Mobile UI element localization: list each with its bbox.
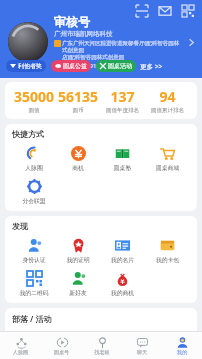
staticText: 94 bbox=[145, 87, 190, 106]
staticText: 找老板 bbox=[82, 349, 122, 356]
staticText: 审核号 bbox=[54, 14, 90, 29]
staticText: 12345678910 bbox=[62, 62, 100, 70]
staticText: 部落 / 活动 bbox=[12, 313, 52, 324]
staticText: 圆桌活动 bbox=[108, 62, 132, 70]
staticText: 圆桌公益 bbox=[63, 62, 87, 70]
staticText: 我的证明 bbox=[56, 256, 100, 263]
staticText: 圆桌商城 bbox=[145, 164, 190, 171]
staticText: 我的 bbox=[162, 349, 202, 356]
staticText: 35000 bbox=[12, 87, 56, 106]
button[interactable]: QR code bbox=[180, 3, 196, 19]
button[interactable]: 部落申请 bbox=[56, 328, 100, 354]
staticText: 商机 bbox=[56, 164, 100, 171]
staticText: 部落 bbox=[12, 349, 56, 352]
button[interactable]: 35000 bbox=[12, 87, 56, 114]
button[interactable]: 我的证明 bbox=[56, 235, 100, 265]
staticText: 身份认证 bbox=[12, 256, 56, 263]
staticText: 圆值 bbox=[12, 107, 56, 114]
button[interactable]: 创建部落 bbox=[100, 328, 145, 354]
button[interactable]: 我的名片 bbox=[100, 235, 145, 265]
staticText: 137 bbox=[100, 87, 145, 106]
staticText: 新好友 bbox=[56, 289, 100, 296]
button[interactable]: 我的活动 bbox=[145, 328, 190, 354]
button[interactable]: 商机 bbox=[56, 143, 100, 173]
button[interactable]: 圆桌塾 bbox=[100, 143, 145, 173]
button[interactable]: 圆桌商城 bbox=[145, 143, 190, 173]
staticText: 圆值年度排名 bbox=[100, 107, 145, 114]
staticText: 我的活动 bbox=[145, 349, 190, 352]
button[interactable]: 找老板 bbox=[82, 332, 122, 359]
staticText: 聊天 bbox=[122, 349, 162, 356]
button[interactable]: 聊天 bbox=[122, 332, 162, 359]
button[interactable]: 更多 >> bbox=[140, 62, 163, 71]
staticText: 创建部落 bbox=[100, 349, 145, 352]
staticText: 我的卡包 bbox=[145, 256, 190, 263]
button[interactable]: 圆桌号 bbox=[41, 332, 82, 359]
staticText: 圆值累计排名 bbox=[145, 107, 190, 114]
staticText: 人脉圈 bbox=[12, 164, 56, 171]
staticText: 广州市瑞凯网络科技 bbox=[54, 30, 113, 38]
staticText: 分会联盟 bbox=[12, 197, 56, 204]
staticText: 圆桌塾 bbox=[100, 164, 145, 171]
button[interactable]: 圆桌公益 bbox=[51, 60, 91, 72]
staticText: 圆币 bbox=[56, 107, 100, 114]
button[interactable]: 新好友 bbox=[56, 268, 100, 298]
button[interactable]: 部落 bbox=[12, 328, 56, 354]
button[interactable]: 利他者奖 bbox=[6, 60, 46, 72]
staticText: 利他者奖 bbox=[18, 62, 42, 70]
button[interactable]: 我的卡包 bbox=[145, 235, 190, 265]
button[interactable]: 身份认证 bbox=[12, 235, 56, 265]
staticText: 56135 bbox=[56, 87, 100, 106]
staticText: 更多 >> bbox=[140, 62, 163, 71]
staticText: 快捷方式 bbox=[12, 129, 44, 139]
staticText: 人脉圈 bbox=[0, 349, 41, 356]
staticText: 部落申请 bbox=[56, 349, 100, 352]
button[interactable]: 56135 bbox=[56, 87, 100, 114]
button[interactable]: Messages bbox=[157, 3, 173, 19]
button[interactable]: 人脉圈 bbox=[0, 332, 41, 359]
other: More bbox=[184, 35, 198, 49]
button[interactable]: 人脉圈 bbox=[12, 143, 56, 173]
staticText: 我的二维码 bbox=[12, 289, 56, 296]
staticText: 广东广州天河区粽进街道聚馨餐厅(配科智谷园林式创意园 店)配科智谷园林式创意园 bbox=[62, 39, 184, 61]
staticText: 我的名片 bbox=[100, 256, 145, 263]
button[interactable]: 我的商机 bbox=[100, 268, 145, 298]
staticText: 我的商机 bbox=[100, 289, 145, 296]
button[interactable]: Scan bbox=[134, 3, 150, 19]
button[interactable]: 分会联盟 bbox=[12, 176, 56, 206]
button[interactable]: 我的二维码 bbox=[12, 268, 56, 298]
button[interactable]: 审核号 bbox=[8, 14, 198, 70]
button[interactable]: 137 bbox=[100, 87, 145, 114]
staticText: 圆桌号 bbox=[41, 349, 82, 356]
button[interactable]: 94 bbox=[145, 87, 190, 114]
staticText: 发现 bbox=[12, 221, 28, 231]
button[interactable]: 我的 bbox=[162, 332, 202, 359]
button[interactable]: 圆桌活动 bbox=[96, 60, 136, 72]
